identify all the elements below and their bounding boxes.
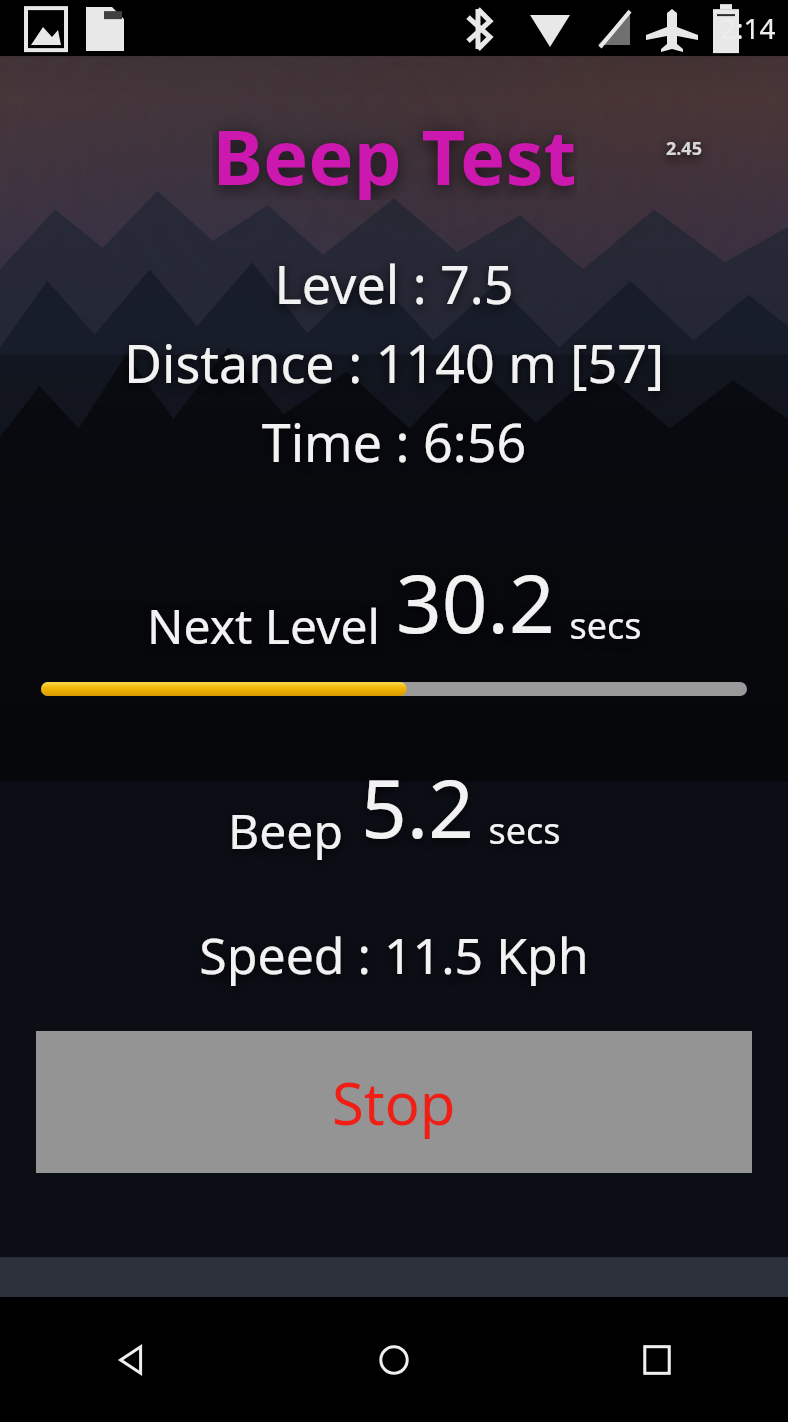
button[interactable]: Back [0,1297,262,1422]
button[interactable]: Home [262,1297,525,1422]
staticText: Beep Test [212,104,577,200]
staticText: Level : 7.5 [0,248,788,319]
staticText: 5.2 [361,752,474,861]
staticText: secs [569,601,642,650]
staticText: Next Level [147,593,380,658]
button[interactable]: Recent apps [525,1297,788,1422]
staticText: 2.45 [666,136,702,161]
staticText: 2:14 [720,9,776,47]
staticText: Speed : 11.5 Kph [0,921,788,989]
staticText: Distance : 1140 m [57] [0,327,788,398]
staticText: 30.2 [396,547,555,656]
staticText: Time : 6:56 [0,406,788,477]
staticText: secs [488,806,561,855]
staticText: Stop [332,1063,456,1142]
button[interactable]: Stop [36,1031,752,1173]
staticText: Beep [228,798,343,863]
